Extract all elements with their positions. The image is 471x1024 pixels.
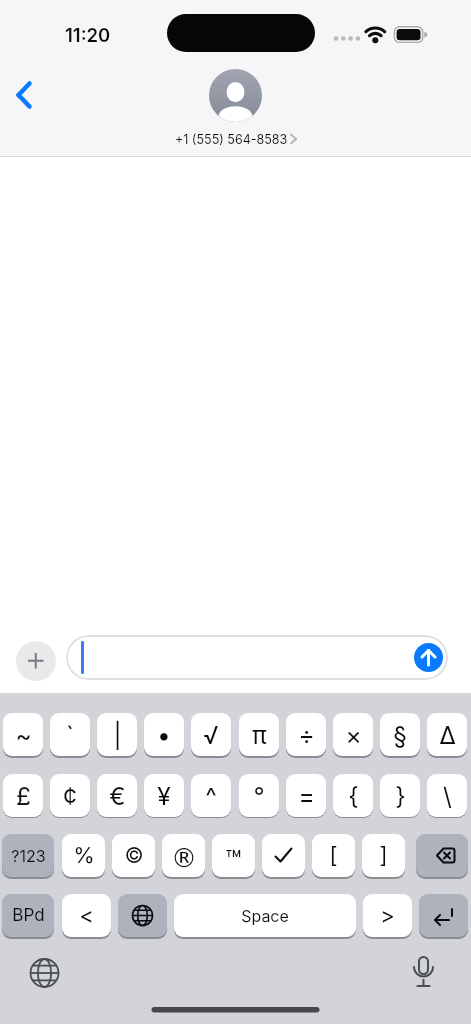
staticText: \ (443, 781, 452, 811)
staticText: % (73, 842, 95, 869)
button[interactable]: } (380, 774, 420, 817)
button[interactable]: ^ (191, 774, 231, 817)
staticText: Δ (439, 720, 456, 750)
button[interactable]: ~ (3, 713, 43, 756)
staticText: © (124, 843, 144, 868)
button[interactable]: £ (3, 774, 43, 817)
staticText: ÷ (298, 720, 315, 750)
staticText: 11:20 (65, 24, 111, 46)
staticText: | (113, 720, 122, 750)
staticText: ` (66, 720, 74, 750)
button[interactable]: % (62, 834, 105, 877)
button[interactable]: ° (239, 774, 279, 817)
staticText: ® (171, 843, 197, 873)
button[interactable] (419, 894, 468, 937)
staticText: ~ (15, 720, 32, 750)
staticText: > (380, 902, 395, 929)
button[interactable]: = (286, 774, 326, 817)
button[interactable]: ÷ (286, 713, 326, 756)
button[interactable]: √ (191, 713, 231, 756)
button[interactable] (416, 834, 468, 877)
button[interactable]: ¥ (144, 774, 184, 817)
staticText: ™ (225, 844, 242, 877)
staticText: BPd (12, 905, 45, 926)
staticText: π (252, 720, 267, 750)
button[interactable]: Space (174, 894, 356, 937)
button[interactable]: ™ (212, 834, 255, 877)
staticText: € (109, 781, 126, 811)
button[interactable]: < (62, 894, 111, 937)
staticText: ^ (205, 781, 217, 811)
button[interactable]: © (112, 834, 155, 877)
button[interactable] (118, 894, 167, 937)
button[interactable]: ] (362, 834, 405, 877)
staticText: Space (241, 906, 289, 925)
staticText: • (157, 720, 171, 750)
button[interactable]: ® (162, 834, 205, 877)
staticText: +1 (555) 564-8583 (175, 132, 288, 147)
button[interactable]: • (144, 713, 184, 756)
button[interactable]: ?123 (2, 834, 54, 877)
staticText: ] (379, 842, 388, 869)
staticText: × (345, 720, 362, 750)
staticText: ° (253, 781, 265, 811)
button[interactable]: ` (50, 713, 90, 756)
button[interactable] (16, 641, 56, 681)
staticText: ¥ (157, 781, 171, 811)
button[interactable]: +1 (555) 564-8583 (0, 129, 471, 149)
button[interactable]: ¢ (50, 774, 90, 817)
button[interactable]: € (97, 774, 137, 817)
staticText: √ (203, 720, 219, 750)
staticText: £ (16, 781, 31, 811)
button[interactable]: Δ (427, 713, 467, 756)
staticText: = (298, 781, 315, 811)
button[interactable] (262, 834, 305, 877)
button[interactable]: × (333, 713, 373, 756)
button[interactable]: π (239, 713, 279, 756)
staticText: ?123 (11, 846, 46, 865)
button[interactable] (209, 69, 262, 122)
staticText: < (79, 902, 94, 929)
staticText: [ (329, 842, 338, 869)
button[interactable]: \ (427, 774, 467, 817)
staticText: § (393, 720, 407, 750)
button[interactable]: BPd (2, 894, 54, 937)
staticText: } (395, 781, 406, 811)
button[interactable]: [ (312, 834, 355, 877)
staticText: ¢ (63, 781, 77, 811)
button[interactable]: | (97, 713, 137, 756)
button[interactable]: > (363, 894, 412, 937)
button[interactable]: { (333, 774, 373, 817)
button[interactable]: § (380, 713, 420, 756)
button[interactable] (66, 635, 448, 680)
button[interactable] (414, 643, 443, 672)
staticText: { (348, 781, 359, 811)
